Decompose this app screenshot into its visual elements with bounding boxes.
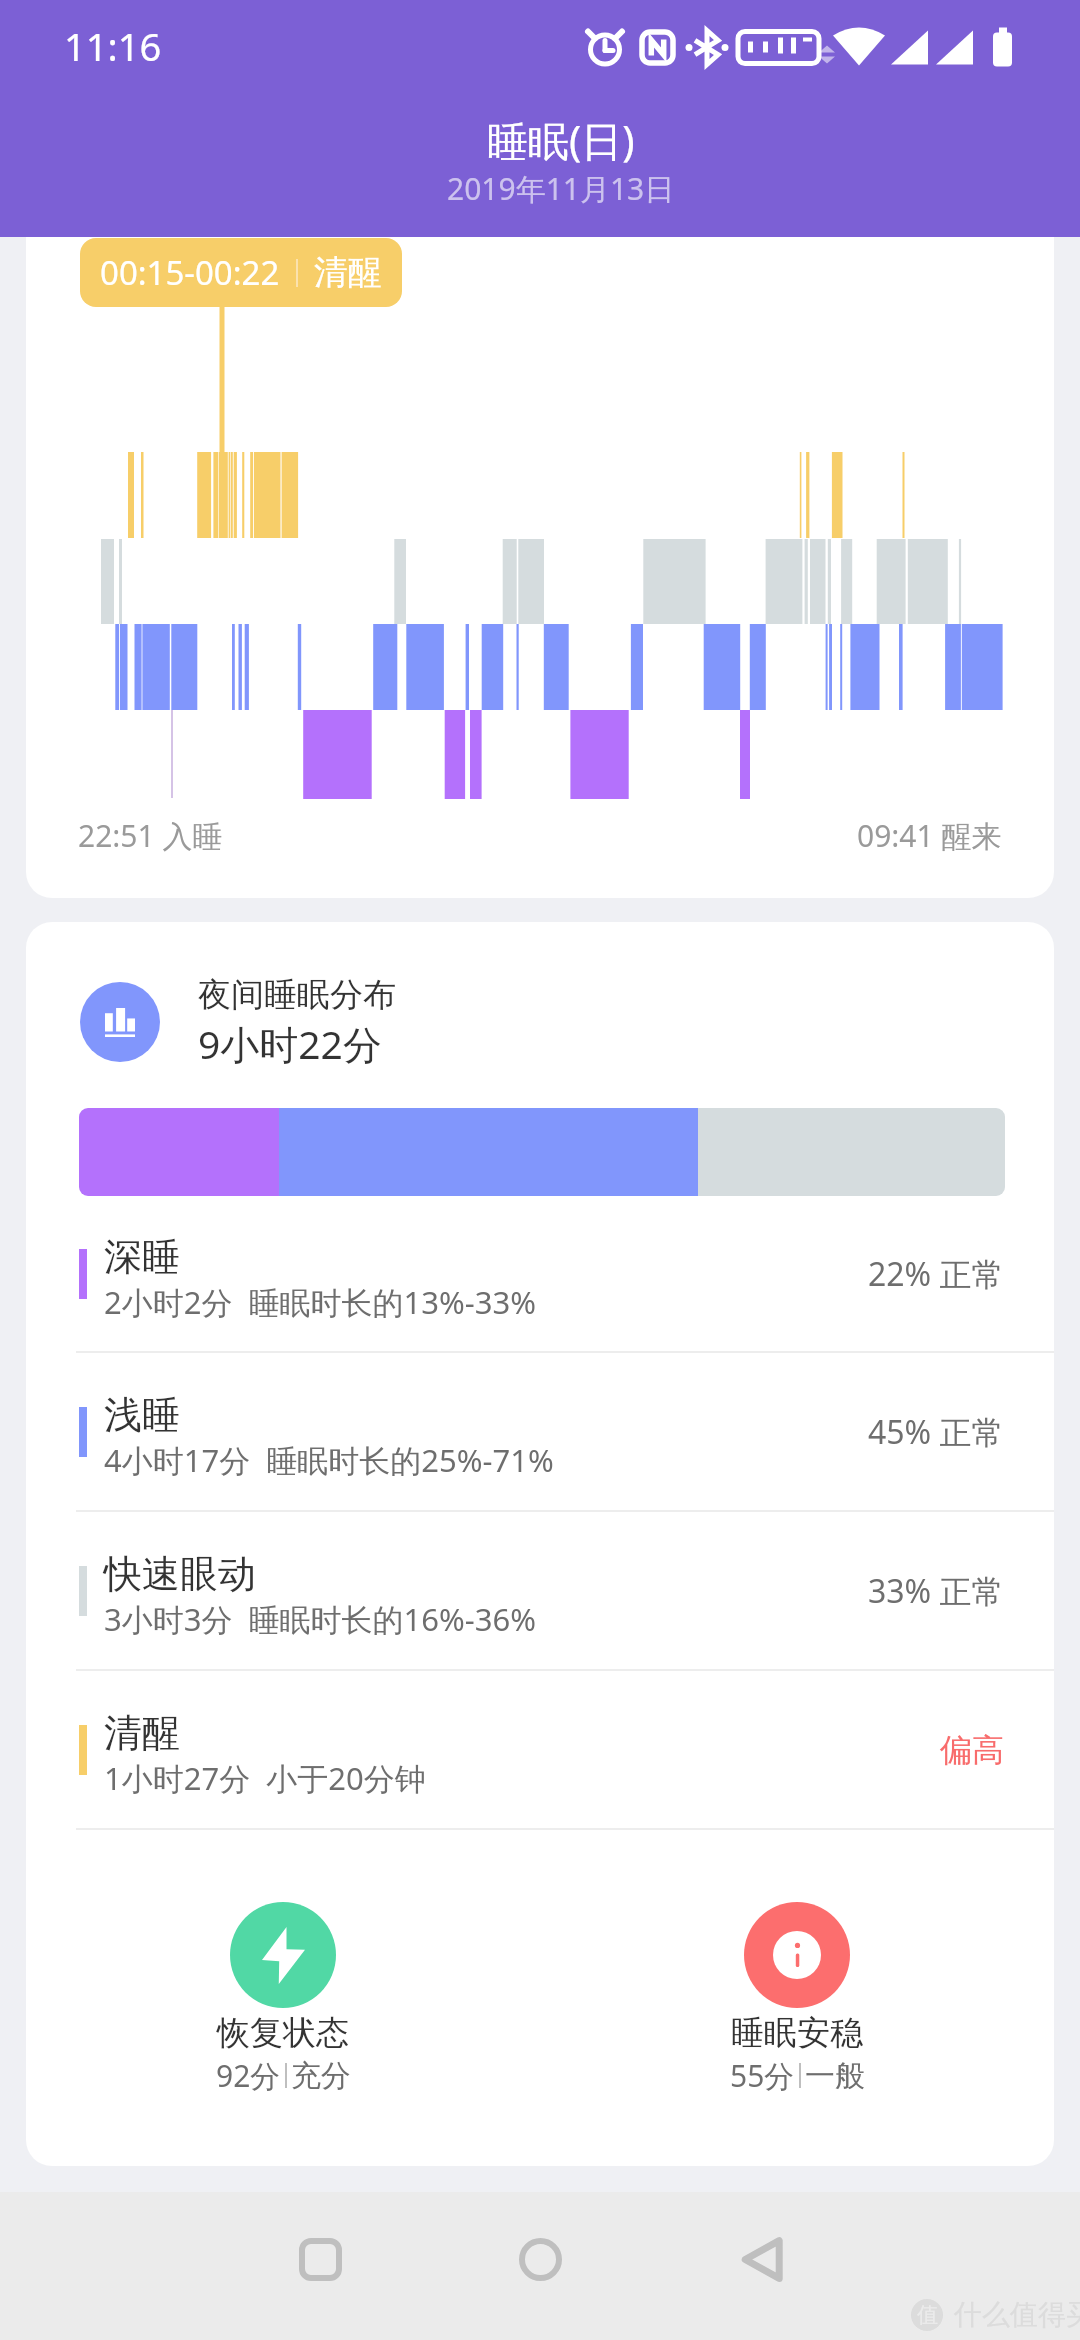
staticText: 夜间睡眠分布	[198, 974, 396, 1016]
button[interactable]: Home	[480, 2220, 600, 2298]
staticText: 充分	[291, 2057, 351, 2095]
staticText: 1小时27分 小于20分钟	[104, 1757, 426, 1799]
button[interactable]: 清醒	[26, 1671, 1054, 1828]
staticText: 55分	[730, 2055, 795, 2096]
staticText: 9小时22分	[198, 1017, 382, 1070]
staticText: 清醒	[314, 251, 382, 294]
staticText: 2小时2分 睡眠时长的13%-33%	[104, 1281, 537, 1323]
staticText: 睡眠安稳	[731, 2012, 863, 2054]
staticText: 33% 正常	[868, 1569, 1004, 1613]
button[interactable]: 快速眼动	[26, 1512, 1054, 1669]
button[interactable]: 浅睡	[26, 1353, 1054, 1510]
staticText: 一般	[805, 2057, 865, 2095]
staticText: 快速眼动	[104, 1550, 256, 1598]
staticText: 11:16	[64, 20, 162, 72]
staticText: 深睡	[104, 1233, 180, 1281]
staticText: 00:15-00:22	[100, 250, 280, 295]
staticText: 偏高	[940, 1730, 1004, 1770]
staticText: 值	[917, 2302, 938, 2328]
staticText: 清醒	[104, 1709, 180, 1757]
staticText: 3小时3分 睡眠时长的16%-36%	[104, 1598, 537, 1640]
button[interactable]: 恢复状态	[26, 1902, 540, 2096]
staticText: 什么值得买	[954, 2297, 1080, 2332]
button[interactable]: 深睡	[26, 1196, 1054, 1351]
button[interactable]: 00:15-00:22	[80, 238, 402, 307]
staticText: 22:51 入睡	[78, 815, 223, 856]
button[interactable]: Recents	[260, 2220, 380, 2298]
button[interactable]: 睡眠安稳	[540, 1902, 1054, 2096]
staticText: 09:41 醒来	[857, 815, 1002, 856]
staticText: 4小时17分 睡眠时长的25%-71%	[104, 1439, 554, 1481]
staticText: 睡眠(日)	[487, 112, 635, 168]
staticText: 45% 正常	[868, 1410, 1004, 1454]
staticText: 恢复状态	[217, 2012, 349, 2054]
button[interactable]: Back	[702, 2220, 822, 2298]
staticText: 2019年11月13日	[447, 168, 675, 209]
staticText: 浅睡	[104, 1391, 180, 1439]
button[interactable]: 00:15-00:22	[26, 237, 1054, 898]
staticText: 22% 正常	[868, 1252, 1004, 1296]
staticText: 92分	[216, 2055, 281, 2096]
